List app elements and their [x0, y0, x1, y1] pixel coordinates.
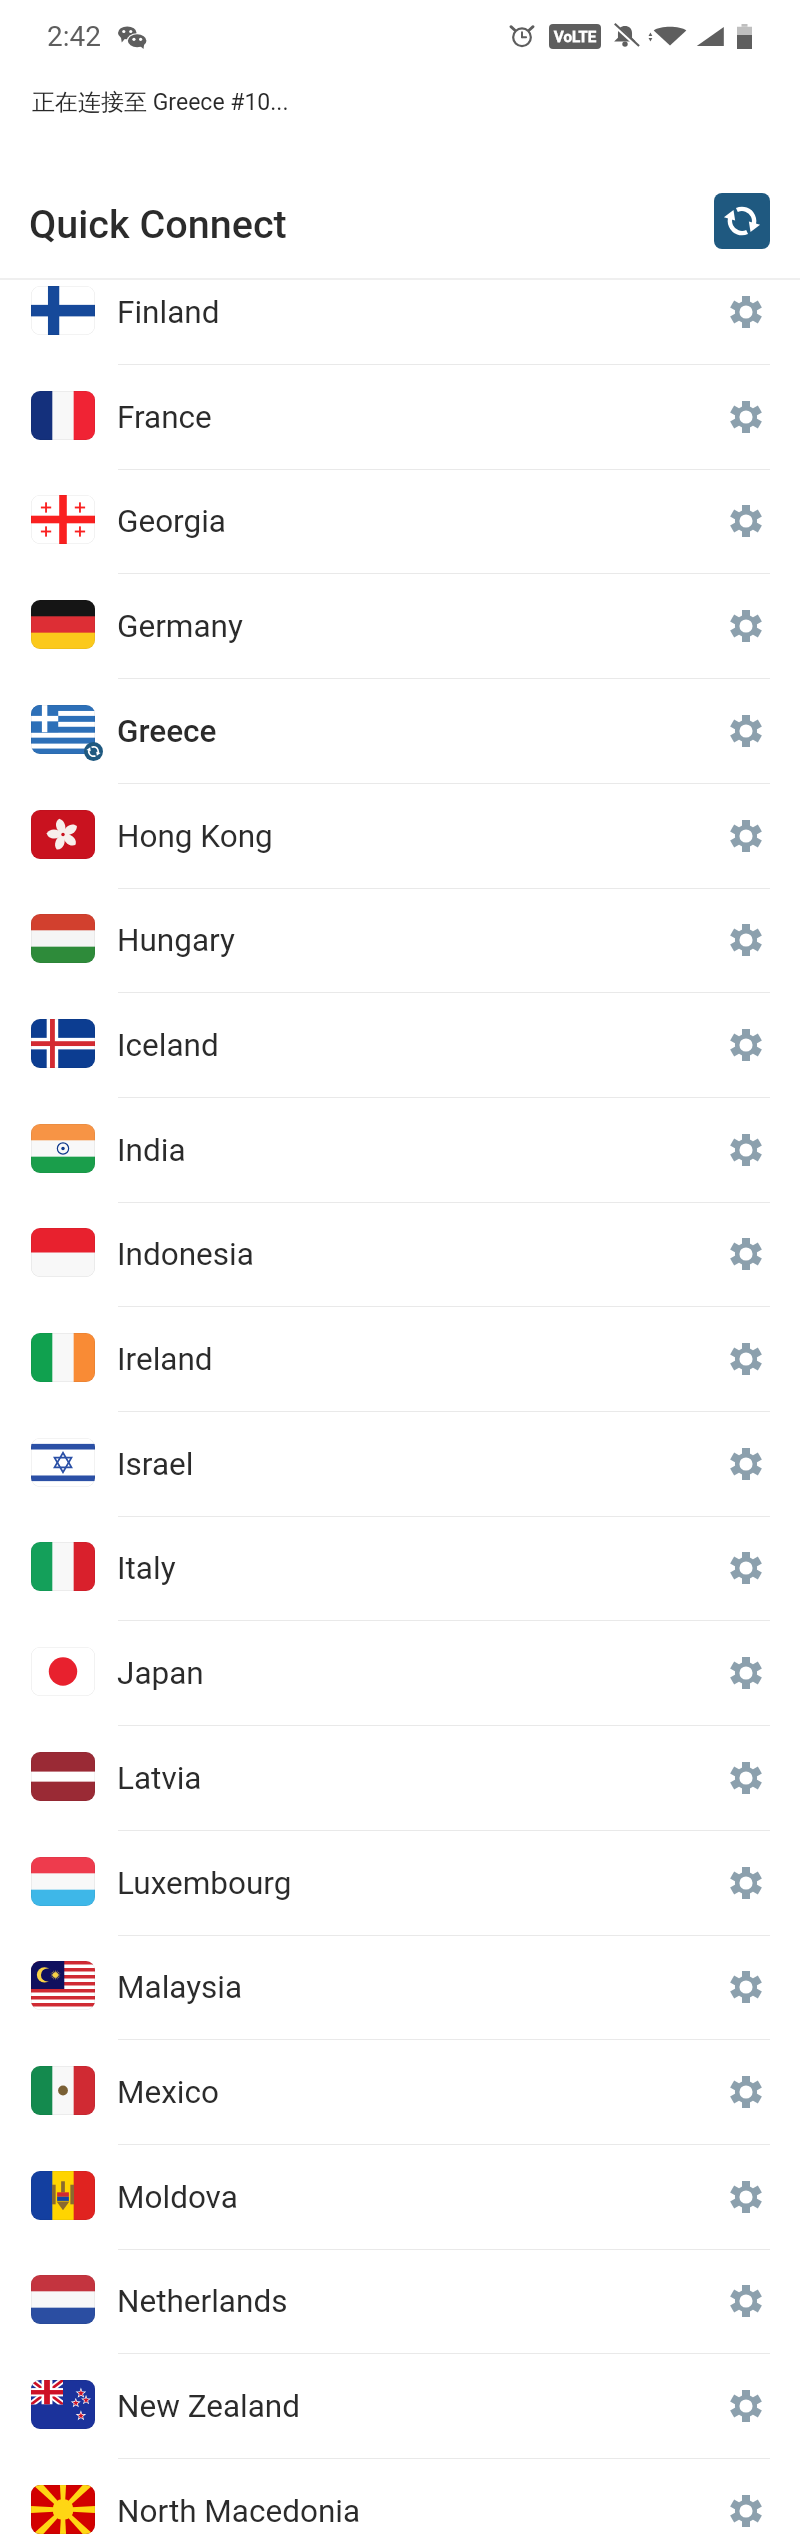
button[interactable]: Georgia — [0, 469, 800, 574]
staticText: Quick Connect — [29, 201, 287, 247]
button[interactable]: Settings for Iceland — [722, 1021, 770, 1069]
button[interactable]: Settings for Germany — [722, 602, 770, 650]
button[interactable]: Mexico — [0, 2040, 800, 2145]
button[interactable]: Moldova — [0, 2145, 800, 2250]
staticText: Latvia — [117, 1760, 202, 1797]
staticText: Mexico — [117, 2074, 219, 2111]
staticText: Georgia — [117, 503, 226, 540]
staticText: Ireland — [117, 1341, 213, 1378]
staticText: Luxembourg — [117, 1865, 292, 1902]
button[interactable]: Settings for New Zealand — [722, 2382, 770, 2430]
staticText: Hungary — [117, 922, 235, 959]
staticText: Moldova — [117, 2179, 238, 2216]
button[interactable]: Settings for Georgia — [722, 497, 770, 545]
staticText: North Macedonia — [117, 2493, 361, 2530]
staticText: Netherlands — [117, 2283, 288, 2320]
button[interactable]: Finland — [0, 260, 800, 365]
staticText: Greece — [117, 713, 217, 750]
button[interactable]: Luxembourg — [0, 1831, 800, 1936]
staticText: VoLTE — [554, 28, 597, 46]
button[interactable]: Latvia — [0, 1726, 800, 1831]
staticText: Israel — [117, 1446, 194, 1483]
button[interactable]: Settings for India — [722, 1126, 770, 1174]
button[interactable]: North Macedonia — [0, 2459, 800, 2546]
button[interactable]: Netherlands — [0, 2249, 800, 2354]
button[interactable]: Settings for Malaysia — [722, 1963, 770, 2011]
button[interactable]: Settings for Indonesia — [722, 1230, 770, 1278]
button[interactable]: Settings for Latvia — [722, 1754, 770, 1802]
staticText: India — [117, 1132, 186, 1169]
staticText: Germany — [117, 608, 243, 645]
button[interactable]: Refresh — [714, 193, 770, 249]
staticText: Italy — [117, 1550, 176, 1587]
staticText: France — [117, 399, 212, 436]
button[interactable]: Settings for Japan — [722, 1649, 770, 1697]
button[interactable]: Settings for Luxembourg — [722, 1859, 770, 1907]
button[interactable]: New Zealand — [0, 2354, 800, 2459]
staticText: 正在连接至 Greece #10... — [32, 88, 289, 117]
button[interactable]: Settings for Hungary — [722, 916, 770, 964]
staticText: Japan — [117, 1655, 204, 1692]
button[interactable]: Settings for France — [722, 393, 770, 441]
button[interactable]: Settings for Mexico — [722, 2068, 770, 2116]
staticText: Malaysia — [117, 1969, 243, 2006]
button[interactable]: Settings for Israel — [722, 1440, 770, 1488]
staticText: Iceland — [117, 1027, 219, 1064]
button[interactable]: Japan — [0, 1621, 800, 1726]
button[interactable]: Israel — [0, 1412, 800, 1517]
button[interactable]: Settings for North Macedonia — [722, 2487, 770, 2535]
button[interactable]: Germany — [0, 574, 800, 679]
staticText: Hong Kong — [117, 818, 273, 855]
button[interactable]: France — [0, 365, 800, 470]
button[interactable]: Hungary — [0, 888, 800, 993]
button[interactable]: India — [0, 1098, 800, 1203]
button[interactable]: Settings for Hong Kong — [722, 812, 770, 860]
staticText: 2:42 — [47, 20, 101, 53]
button[interactable]: Ireland — [0, 1307, 800, 1412]
button[interactable]: Indonesia — [0, 1202, 800, 1307]
button[interactable]: Italy — [0, 1516, 800, 1621]
button[interactable]: Iceland — [0, 993, 800, 1098]
button[interactable]: Hong Kong — [0, 784, 800, 889]
button[interactable]: Settings for Finland — [722, 288, 770, 336]
button[interactable]: Malaysia — [0, 1935, 800, 2040]
staticText: New Zealand — [117, 2388, 301, 2425]
staticText: Finland — [117, 294, 220, 331]
button[interactable]: Settings for Italy — [722, 1544, 770, 1592]
button[interactable]: Settings for Greece — [722, 707, 770, 755]
staticText: Indonesia — [117, 1236, 254, 1273]
button[interactable]: Settings for Netherlands — [722, 2277, 770, 2325]
button[interactable]: Settings for Ireland — [722, 1335, 770, 1383]
button[interactable]: Settings for Moldova — [722, 2173, 770, 2221]
button[interactable]: Greece — [0, 679, 800, 784]
